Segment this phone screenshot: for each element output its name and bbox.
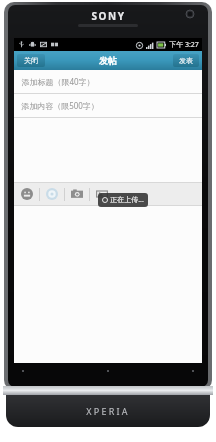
button[interactable]: 添加标题（限40字） [14,70,202,93]
button[interactable]: 添加内容（限500字） [14,94,202,117]
button[interactable]: Gallery [93,185,111,203]
staticText: 下午 3:27 [169,40,199,50]
staticText: 正在上传... [110,195,144,205]
button[interactable]: Location [43,185,61,203]
staticText: 发帖 [99,55,117,66]
staticText: 发表 [179,56,193,65]
staticText: 添加内容（限500字） [21,100,99,111]
button[interactable]: Camera [68,185,86,203]
staticText: XPERIA [86,405,130,417]
button[interactable]: 发表 [173,54,199,67]
button[interactable]: 关闭 [17,54,45,67]
button[interactable]: Emoji [18,185,36,203]
staticText: SONY [91,9,126,23]
staticText: 添加标题（限40字） [21,76,95,87]
staticText: 关闭 [24,56,38,65]
